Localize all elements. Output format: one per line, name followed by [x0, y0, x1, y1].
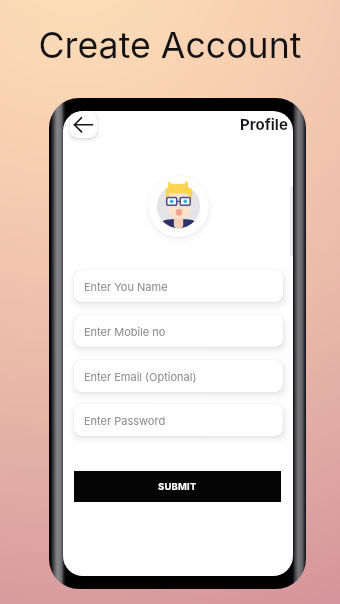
- button[interactable]: Enter Mobile no: [74, 315, 283, 347]
- staticText: Enter You Name: [84, 280, 168, 293]
- staticText: Enter Email (Optional): [84, 370, 197, 383]
- button[interactable]: SUBMIT: [74, 471, 281, 502]
- staticText: Enter Password: [84, 414, 166, 427]
- button[interactable]: Enter You Name: [74, 270, 283, 302]
- staticText: Enter Mobile no: [84, 325, 166, 338]
- staticText: Profile: [240, 115, 288, 133]
- button[interactable]: Back: [70, 111, 97, 138]
- staticText: Create Account: [0, 23, 340, 66]
- button[interactable]: Enter Password: [74, 404, 283, 436]
- button[interactable]: Enter Email (Optional): [74, 360, 283, 392]
- staticText: SUBMIT: [158, 481, 197, 492]
